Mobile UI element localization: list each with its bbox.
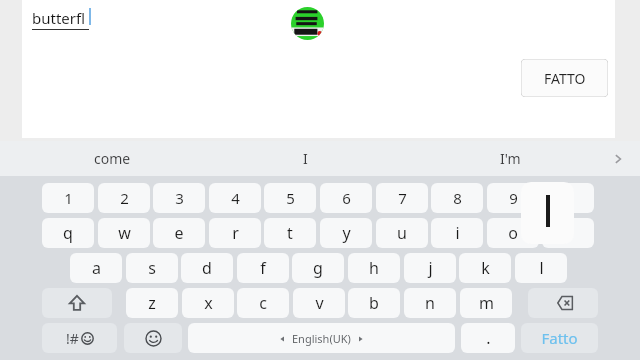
button[interactable]: s xyxy=(126,253,178,283)
staticText: x xyxy=(204,292,213,314)
staticText: 3 xyxy=(175,188,184,208)
button[interactable]: z xyxy=(126,288,178,318)
staticText: n xyxy=(425,292,435,314)
button[interactable]: 4 xyxy=(209,183,261,213)
button[interactable]: k xyxy=(459,253,511,283)
button[interactable]: 2 xyxy=(98,183,150,213)
staticText: r xyxy=(232,222,239,244)
button[interactable]: Shift xyxy=(42,288,112,318)
staticText: 7 xyxy=(398,188,407,208)
staticText: c xyxy=(259,292,267,314)
button[interactable]: Emoji xyxy=(124,323,182,353)
button[interactable]: Symbols xyxy=(42,323,117,353)
staticText: I'm xyxy=(500,149,521,168)
button[interactable]: h xyxy=(348,253,400,283)
staticText: 9 xyxy=(509,188,518,208)
staticText: q xyxy=(63,222,73,244)
staticText: I xyxy=(303,149,308,168)
button[interactable]: 3 xyxy=(153,183,205,213)
staticText: 5 xyxy=(286,188,295,208)
staticText: o xyxy=(508,222,518,244)
staticText: !# xyxy=(66,329,79,348)
button[interactable]: t xyxy=(264,218,316,248)
staticText: y xyxy=(342,222,351,244)
staticText: 2 xyxy=(120,188,129,208)
staticText: 6 xyxy=(342,188,351,208)
staticText: i xyxy=(455,222,460,244)
button[interactable]: l xyxy=(515,253,567,283)
button[interactable]: x xyxy=(182,288,234,318)
button[interactable]: 0 xyxy=(542,183,594,213)
staticText: butterfl xyxy=(32,8,86,28)
button[interactable]: o xyxy=(487,218,539,248)
button[interactable]: come xyxy=(22,141,202,176)
button[interactable]: Backspace xyxy=(528,288,598,318)
staticText: Fatto xyxy=(541,328,578,348)
staticText: t xyxy=(287,222,293,244)
button[interactable]: r xyxy=(209,218,261,248)
button[interactable]: m xyxy=(460,288,512,318)
button[interactable]: 6 xyxy=(320,183,372,213)
staticText: f xyxy=(260,257,266,279)
staticText: come xyxy=(94,149,131,168)
staticText: English(UK) xyxy=(292,331,351,346)
staticText: u xyxy=(397,222,407,244)
staticText: . xyxy=(486,327,491,349)
button[interactable]: f xyxy=(237,253,289,283)
button[interactable]: v xyxy=(293,288,345,318)
button[interactable]: n xyxy=(404,288,456,318)
staticText: e xyxy=(174,222,184,244)
button[interactable]: Fatto xyxy=(521,323,598,353)
staticText: 1 xyxy=(64,188,73,208)
staticText: a xyxy=(92,257,101,279)
button[interactable]: g xyxy=(292,253,344,283)
staticText: 8 xyxy=(453,188,462,208)
staticText: l xyxy=(539,257,544,279)
button[interactable]: a xyxy=(70,253,122,283)
button[interactable]: e xyxy=(153,218,205,248)
button[interactable]: y xyxy=(320,218,372,248)
button[interactable]: c xyxy=(237,288,289,318)
button[interactable]: Logo xyxy=(291,7,324,40)
button[interactable]: p xyxy=(542,218,594,248)
button[interactable]: q xyxy=(42,218,94,248)
button[interactable]: b xyxy=(348,288,400,318)
button[interactable]: 9 xyxy=(487,183,539,213)
staticText: b xyxy=(369,292,379,314)
button[interactable]: 1 xyxy=(42,183,94,213)
button[interactable]: 7 xyxy=(376,183,428,213)
button[interactable]: j xyxy=(404,253,456,283)
button[interactable]: 5 xyxy=(264,183,316,213)
staticText: v xyxy=(315,292,324,314)
staticText: k xyxy=(481,257,490,279)
staticText: FATTO xyxy=(544,69,586,88)
button[interactable]: u xyxy=(376,218,428,248)
staticText: j xyxy=(428,257,433,279)
button[interactable]: I'm xyxy=(420,141,600,176)
staticText: w xyxy=(118,222,131,244)
staticText: 4 xyxy=(231,188,240,208)
button[interactable]: d xyxy=(181,253,233,283)
staticText: s xyxy=(148,257,156,279)
button[interactable]: . xyxy=(461,323,515,353)
staticText: h xyxy=(369,257,379,279)
button[interactable]: FATTO xyxy=(521,59,608,97)
button[interactable]: Space xyxy=(188,323,455,353)
button[interactable]: More suggestions xyxy=(605,146,630,171)
staticText: d xyxy=(202,257,212,279)
button[interactable]: 8 xyxy=(431,183,483,213)
button[interactable]: i xyxy=(431,218,483,248)
button[interactable]: I xyxy=(215,141,395,176)
staticText: m xyxy=(479,292,494,314)
staticText: z xyxy=(148,292,156,314)
button[interactable]: w xyxy=(98,218,150,248)
staticText: g xyxy=(313,257,323,279)
